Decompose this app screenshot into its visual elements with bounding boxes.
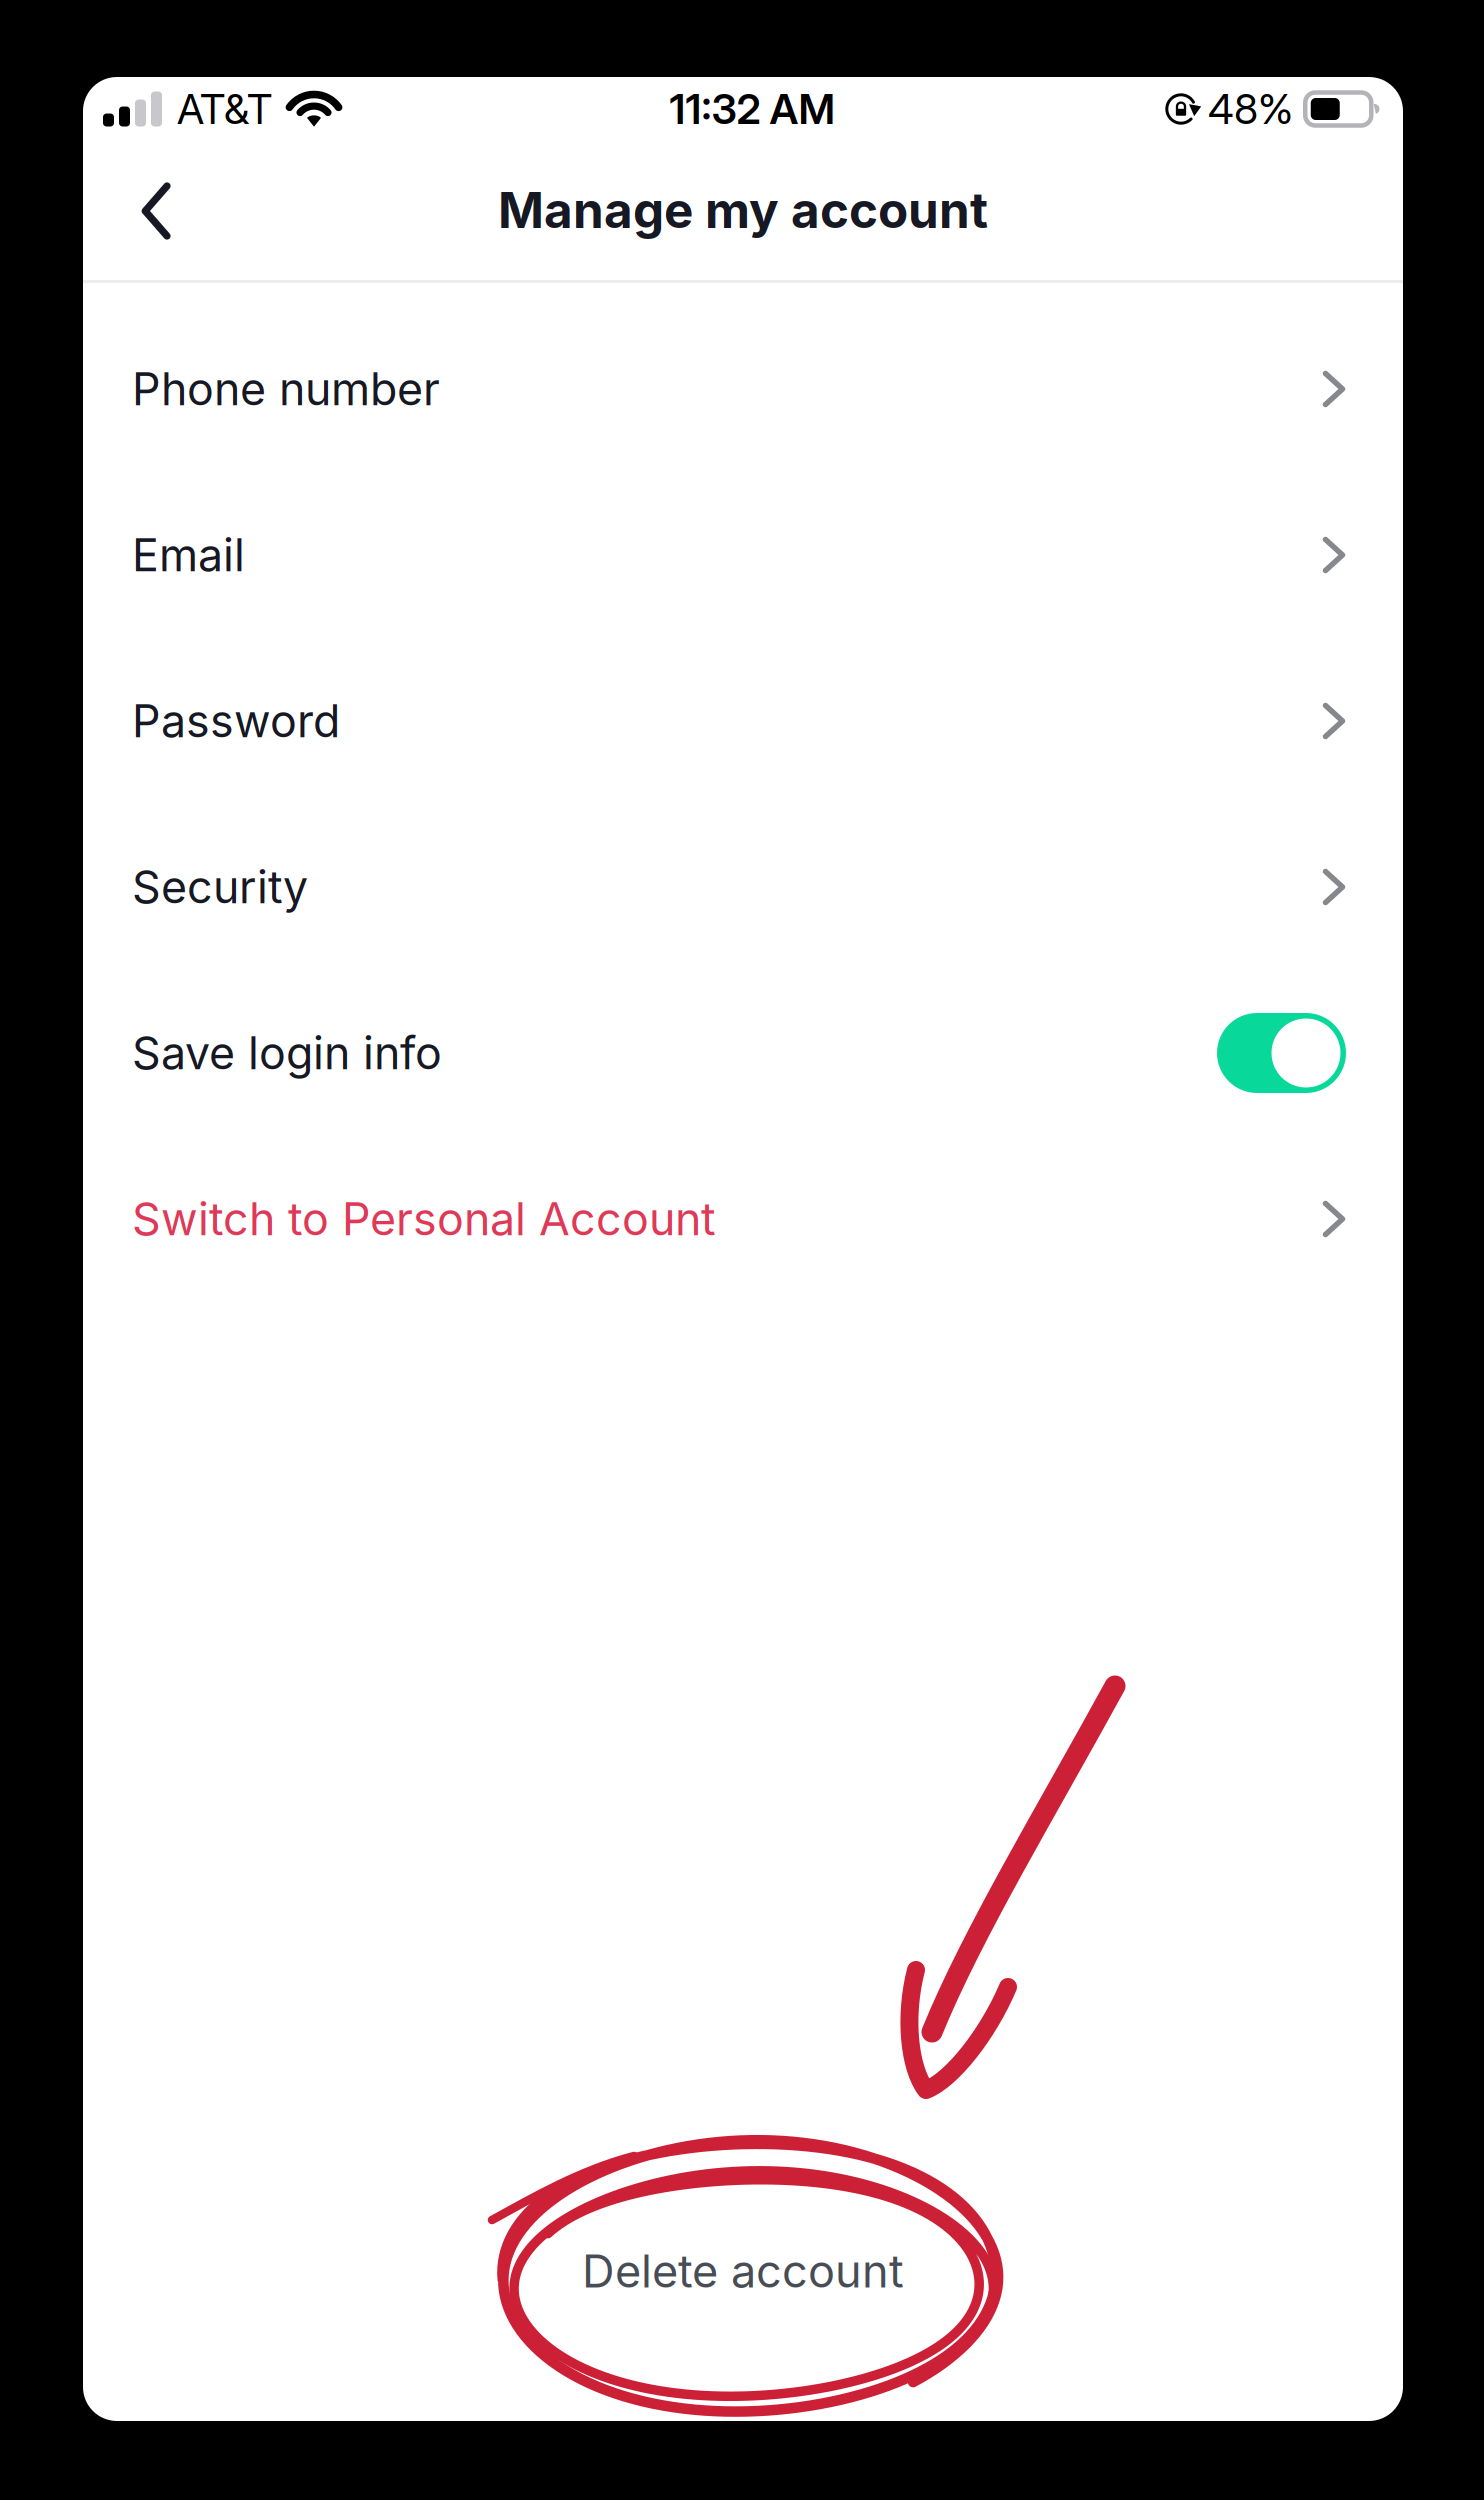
staticText: Email	[132, 528, 245, 582]
button[interactable]: Email	[83, 472, 1403, 638]
staticText: Manage my account	[498, 180, 988, 240]
staticText: Delete account	[582, 2244, 904, 2298]
button[interactable]: Save login info	[83, 970, 1403, 1136]
staticText: Phone number	[132, 362, 440, 416]
staticText: Save login info	[132, 1026, 442, 1080]
staticText: 11:32 AM	[669, 84, 835, 134]
button[interactable]: Save login info, on	[1217, 1013, 1346, 1093]
button[interactable]: Phone number	[83, 306, 1403, 472]
staticText: Password	[132, 694, 340, 748]
button[interactable]: Switch to Personal Account	[83, 1136, 1403, 1302]
staticText: Security	[132, 860, 308, 914]
button[interactable]: Delete account	[83, 2216, 1403, 2326]
button[interactable]: Password	[83, 638, 1403, 804]
staticText: 48%	[1208, 84, 1293, 134]
button[interactable]: Security	[83, 804, 1403, 970]
button[interactable]: Back	[108, 163, 204, 259]
staticText: Switch to Personal Account	[132, 1192, 716, 1246]
staticText: AT&T	[177, 84, 272, 134]
